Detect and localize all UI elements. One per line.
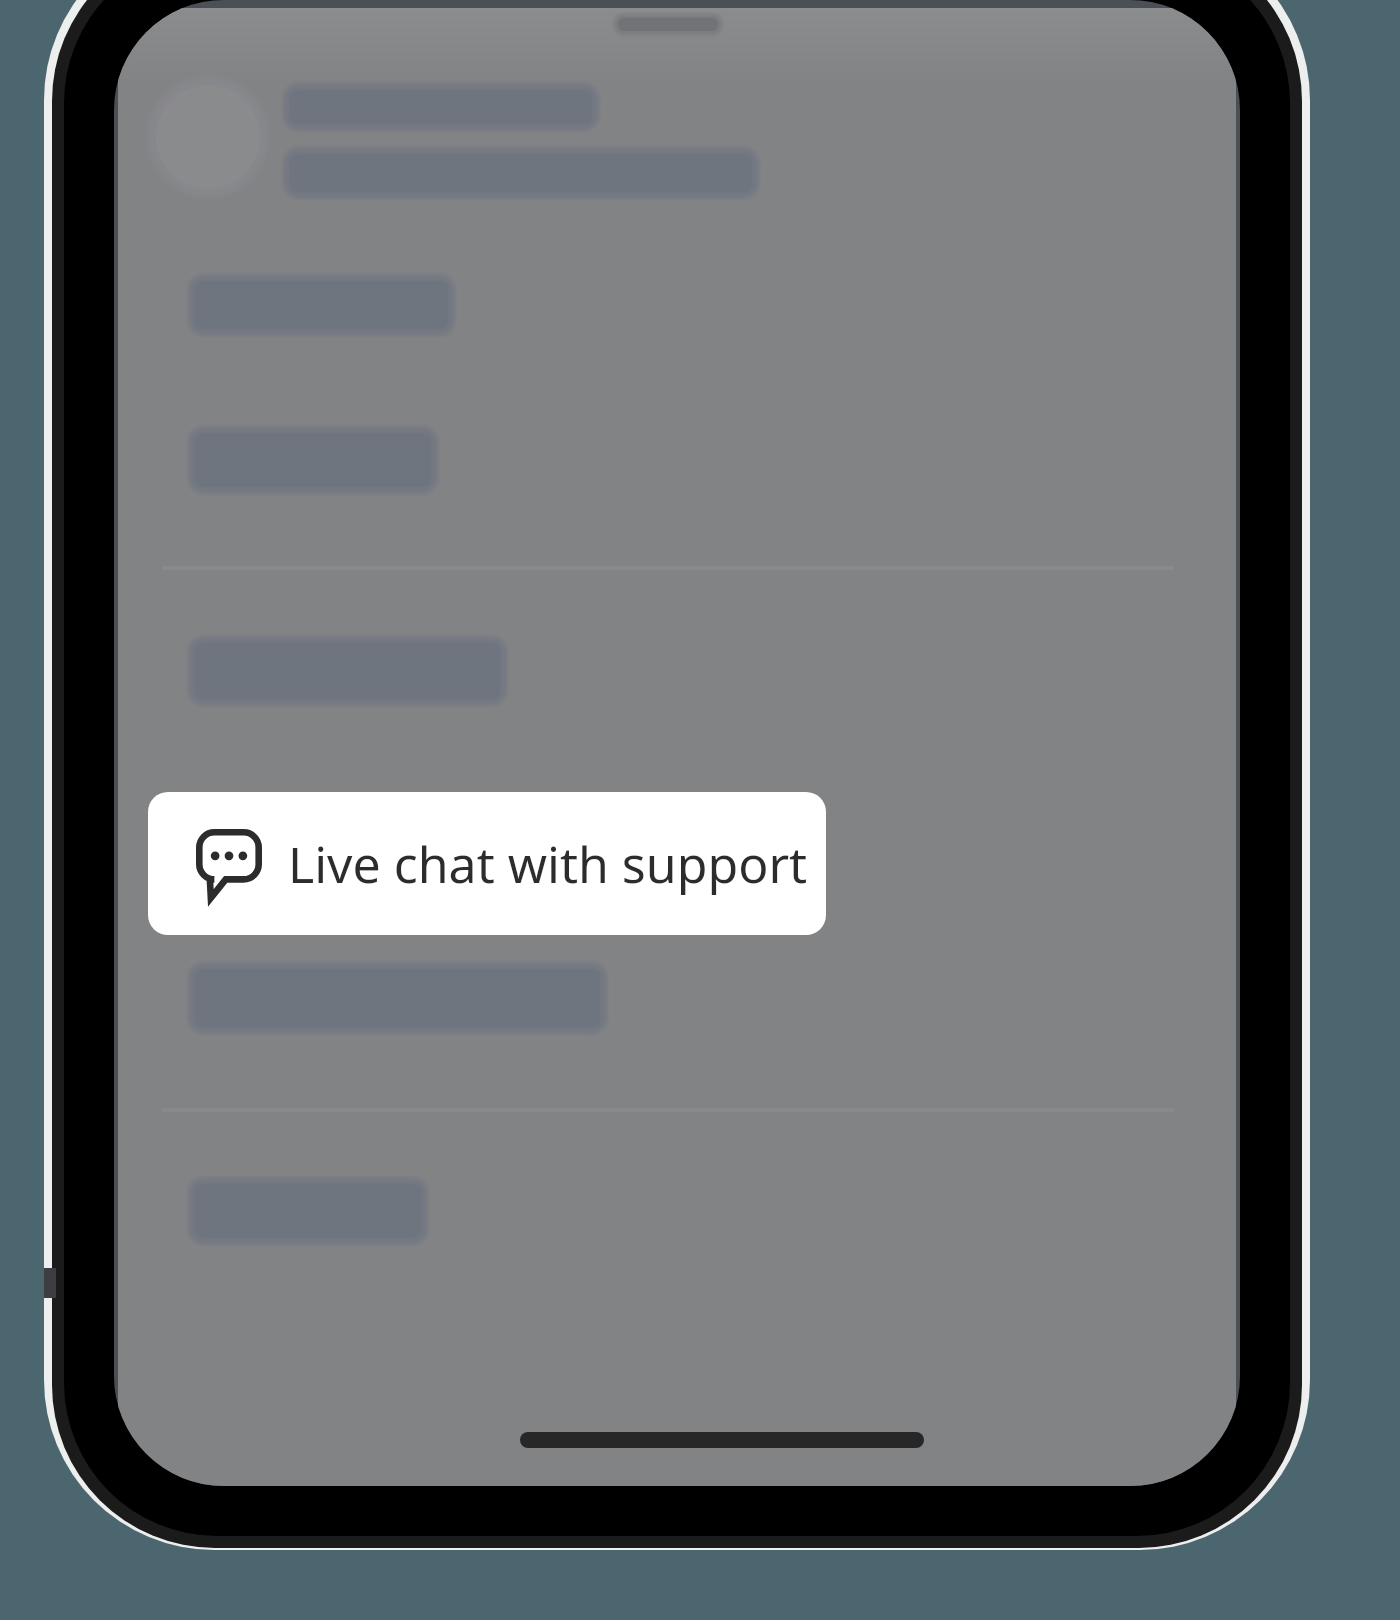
staticText: Live chat with support — [288, 830, 808, 898]
other: Live chat — [196, 829, 262, 899]
button[interactable]: Live chat — [148, 792, 826, 935]
